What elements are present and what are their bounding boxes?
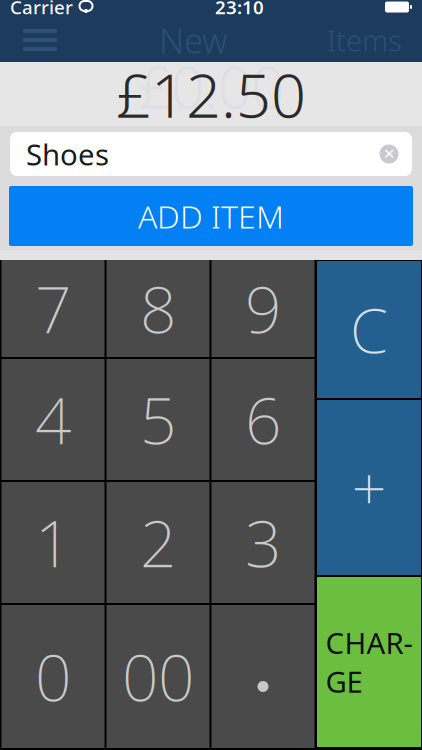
button[interactable]: Decimal point: [211, 605, 314, 748]
button[interactable]: 0: [1, 605, 104, 748]
button[interactable]: 8: [106, 260, 209, 357]
staticText: ADD ITEM: [138, 195, 284, 237]
button[interactable]: 3: [211, 482, 314, 603]
button[interactable]: 9: [211, 260, 314, 357]
staticText: Carrier: [10, 0, 73, 19]
staticText: 1: [35, 500, 71, 585]
button[interactable]: 5: [106, 359, 209, 480]
button[interactable]: 6: [211, 359, 314, 480]
staticText: £0.00: [138, 47, 284, 125]
button[interactable]: 4: [1, 359, 104, 480]
button[interactable]: 7: [1, 260, 104, 357]
staticText: ✕: [383, 146, 395, 162]
staticText: 00: [122, 634, 194, 719]
button[interactable]: ADD ITEM: [9, 186, 413, 246]
button[interactable]: 1: [1, 482, 104, 603]
staticText: +: [351, 447, 386, 528]
staticText: 5: [140, 377, 176, 462]
staticText: 4: [35, 377, 71, 462]
staticText: 7: [35, 266, 71, 351]
staticText: 6: [245, 377, 281, 462]
button[interactable]: Items: [315, 19, 414, 61]
staticText: 3: [245, 500, 281, 585]
button[interactable]: 00: [106, 605, 209, 748]
button[interactable]: +: [317, 400, 421, 575]
staticText: 9: [245, 266, 281, 351]
staticText: Shoes: [26, 134, 109, 173]
button[interactable]: Menu: [8, 19, 72, 61]
staticText: Items: [327, 20, 402, 59]
staticText: 23:10: [215, 0, 264, 19]
button[interactable]: Clear text: [372, 137, 406, 171]
staticText: £12.50: [116, 53, 306, 135]
button[interactable]: 2: [106, 482, 209, 603]
staticText: 0: [35, 634, 71, 719]
staticText: CHARGE: [325, 623, 412, 701]
staticText: 2: [140, 500, 176, 585]
button[interactable]: CHARGE: [317, 577, 421, 747]
staticText: C: [350, 289, 388, 370]
staticText: New: [159, 17, 228, 63]
staticText: 8: [140, 266, 176, 351]
button[interactable]: C: [317, 261, 421, 398]
